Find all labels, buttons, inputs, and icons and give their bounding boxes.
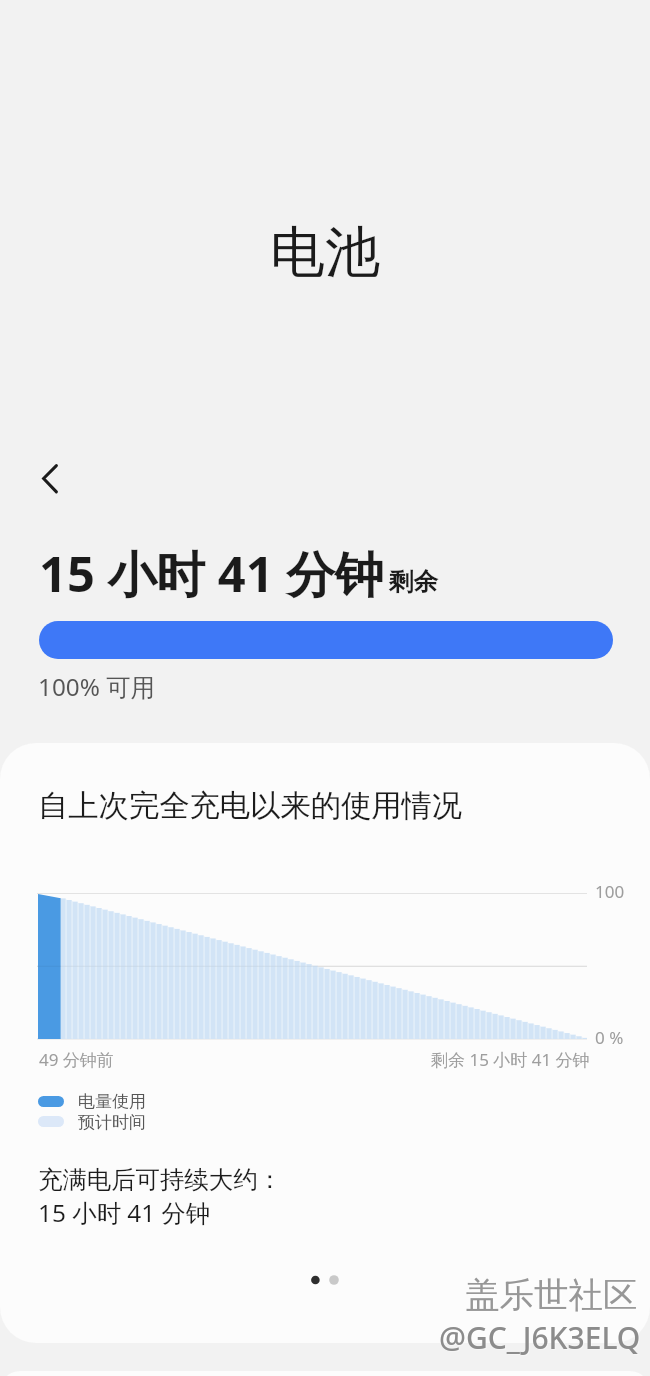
- staticText: @GC_J6K3ELQ: [439, 1317, 641, 1358]
- button[interactable]: [0, 743, 650, 1343]
- staticText: 盖乐世社区: [465, 1274, 638, 1317]
- staticText: 充满电后可持续大约：: [38, 1165, 282, 1196]
- staticText: 盖乐世社区: [467, 1275, 640, 1318]
- button[interactable]: Back: [17, 455, 65, 503]
- staticText: 0 %: [595, 1026, 624, 1049]
- staticText: 剩余 15 小时 41 分钟: [431, 1048, 590, 1071]
- staticText: 15 小时 41 分钟: [39, 540, 384, 607]
- staticText: 剩余: [389, 566, 438, 597]
- staticText: 15 小时 41 分钟: [38, 1196, 211, 1229]
- staticText: 预计时间: [78, 1112, 146, 1133]
- staticText: 100% 可用: [38, 670, 155, 703]
- button[interactable]: Page indicator: [300, 1270, 360, 1290]
- staticText: 自上次完全充电以来的使用情况: [38, 787, 463, 825]
- staticText: 电池: [270, 218, 380, 287]
- staticText: @GC_J6K3ELQ: [440, 1318, 642, 1359]
- staticText: 49 分钟前: [39, 1048, 114, 1071]
- staticText: 电量使用: [78, 1091, 146, 1112]
- staticText: 100: [595, 880, 625, 903]
